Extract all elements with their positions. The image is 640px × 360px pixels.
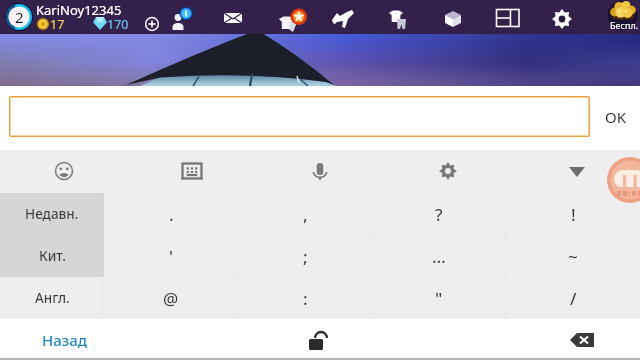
staticText: Англ. xyxy=(35,289,70,307)
staticText: . xyxy=(169,203,174,226)
button[interactable]: Англ. xyxy=(0,277,104,319)
button[interactable]: , xyxy=(238,193,372,235)
button[interactable]: ~ xyxy=(506,235,640,277)
button[interactable]: Shop xyxy=(275,5,301,31)
button[interactable]: Backspace xyxy=(568,327,598,353)
staticText: ! xyxy=(571,203,576,226)
button[interactable]: Недавн. xyxy=(0,193,104,235)
button[interactable]: Wardrobe xyxy=(385,5,411,31)
button[interactable]: … xyxy=(372,235,506,277)
button[interactable]: . xyxy=(104,193,238,235)
staticText: OK xyxy=(605,107,627,127)
button[interactable]: ; xyxy=(238,235,372,277)
button[interactable]: @ xyxy=(104,277,238,319)
button[interactable]: Travel xyxy=(330,5,356,31)
staticText: 17 xyxy=(50,16,65,33)
button[interactable]: Voice input xyxy=(307,158,333,184)
staticText: KariNoy12345 xyxy=(36,1,122,19)
button[interactable]: OK xyxy=(592,96,640,137)
button[interactable]: Friends xyxy=(165,5,191,31)
staticText: ' xyxy=(169,245,174,268)
staticText: Недавн. xyxy=(25,205,79,223)
staticText: 170 xyxy=(107,16,129,33)
button[interactable]: Emoji xyxy=(51,158,77,184)
button[interactable]: Keyboard settings xyxy=(435,158,461,184)
staticText: : xyxy=(303,287,308,310)
button[interactable]: ! xyxy=(506,193,640,235)
staticText: @ xyxy=(163,287,179,310)
staticText: 2 xyxy=(15,7,24,27)
button[interactable]: Кит. xyxy=(0,235,104,277)
button[interactable]: : xyxy=(238,277,372,319)
button[interactable]: Add currency xyxy=(144,16,160,32)
staticText: ; xyxy=(303,245,308,268)
button[interactable]: ? xyxy=(372,193,506,235)
button[interactable]: Keyboard layout xyxy=(179,158,205,184)
staticText: … xyxy=(432,245,446,268)
staticText: " xyxy=(435,287,443,310)
button[interactable]: Layout xyxy=(495,5,521,31)
button[interactable]: Назад xyxy=(29,319,100,360)
staticText: , xyxy=(303,203,308,226)
button[interactable]: Free coins xyxy=(605,0,640,34)
button[interactable]: " xyxy=(372,277,506,319)
staticText: ~ xyxy=(568,245,578,268)
button[interactable]: Unlock xyxy=(303,327,329,353)
staticText: ? xyxy=(435,203,443,226)
staticText: Назад xyxy=(42,330,87,350)
button[interactable]: More xyxy=(564,158,590,184)
button[interactable]: Mail xyxy=(220,5,246,31)
staticText: / xyxy=(570,287,577,310)
button[interactable]: Settings xyxy=(549,5,575,31)
button[interactable]: Level 2 xyxy=(5,3,33,31)
button[interactable]: Inventory xyxy=(440,5,466,31)
staticText: Беспл. xyxy=(610,19,639,31)
staticText: Кит. xyxy=(39,247,66,265)
button[interactable]: / xyxy=(506,277,640,319)
button[interactable]: ' xyxy=(104,235,238,277)
button[interactable] xyxy=(9,96,590,137)
